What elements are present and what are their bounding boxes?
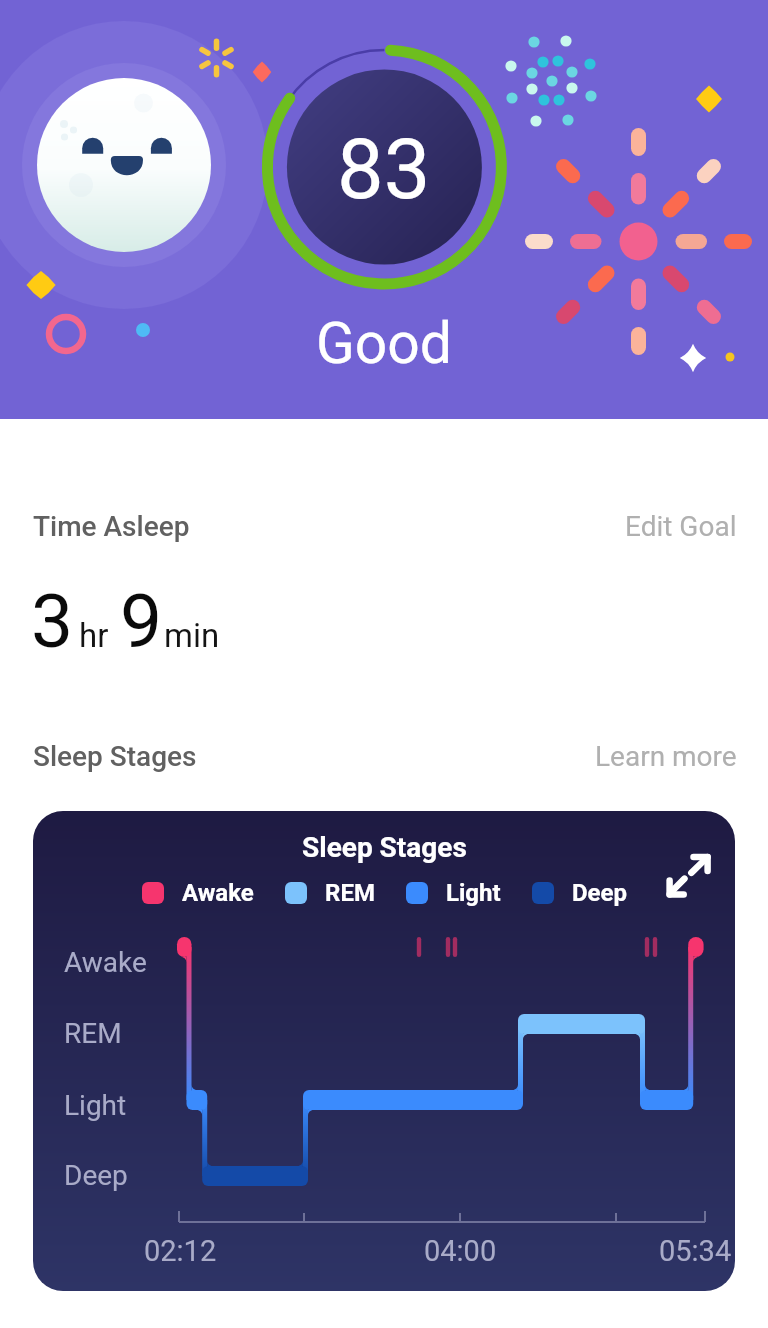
staticText: Edit Goal (625, 510, 737, 543)
staticText: REM (325, 879, 375, 907)
button[interactable]: Time Asleep (33, 510, 190, 543)
staticText: Deep (572, 879, 628, 907)
button[interactable]: Sleep Stages (33, 740, 197, 773)
staticText: Learn more (595, 740, 737, 773)
staticText: Awake (182, 879, 254, 907)
staticText: Time Asleep (33, 510, 190, 543)
button[interactable]: REM (285, 879, 375, 907)
button[interactable]: Light (406, 879, 501, 907)
staticText: REM (64, 1017, 122, 1050)
staticText: Light (446, 879, 501, 907)
button[interactable]: Sleep Stages (33, 811, 735, 1291)
staticText: 04:00 (424, 1234, 497, 1268)
staticText: hr (79, 616, 109, 655)
staticText: 83 (337, 121, 431, 218)
staticText: 3 (31, 577, 74, 665)
staticText: 02:12 (144, 1234, 217, 1268)
button[interactable]: Learn more (595, 740, 737, 773)
staticText: Sleep Stages (33, 740, 197, 773)
staticText: Good (316, 310, 452, 377)
staticText: Sleep Stages (302, 831, 467, 864)
button[interactable]: Deep (532, 879, 628, 907)
button[interactable]: 83 (284, 69, 484, 269)
staticText: 9 (120, 577, 163, 665)
button[interactable]: Edit Goal (625, 510, 737, 543)
staticText: Light (64, 1089, 127, 1122)
staticText: Deep (64, 1159, 128, 1192)
staticText: 05:34 (659, 1234, 732, 1268)
staticText: min (164, 616, 220, 655)
button[interactable]: Awake (142, 879, 254, 907)
staticText: Awake (64, 946, 147, 979)
button[interactable]: Expand chart (663, 850, 715, 902)
